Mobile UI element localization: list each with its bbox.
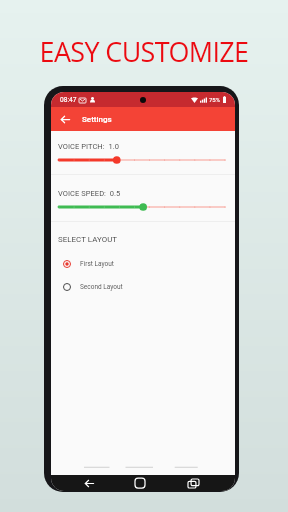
staticText: SELECT LAYOUT [58, 235, 118, 244]
button[interactable]: Back [80, 475, 98, 491]
staticText: Settings [82, 115, 112, 124]
button[interactable]: Back [57, 111, 73, 127]
button[interactable]: Home [131, 475, 149, 491]
button[interactable]: Recent apps [184, 475, 202, 491]
button[interactable]: Second Layout [51, 277, 235, 296]
staticText: 75% [209, 96, 221, 103]
staticText: 08:47 [60, 96, 77, 104]
staticText: VOICE SPEED: 0.5 [58, 189, 121, 198]
staticText: Second Layout [80, 283, 123, 291]
staticText: EASY CUSTOMIZE [0, 33, 288, 70]
staticText: First Layout [80, 260, 114, 268]
staticText: VOICE PITCH: 1.0 [58, 142, 119, 151]
button[interactable]: First Layout [51, 254, 235, 273]
